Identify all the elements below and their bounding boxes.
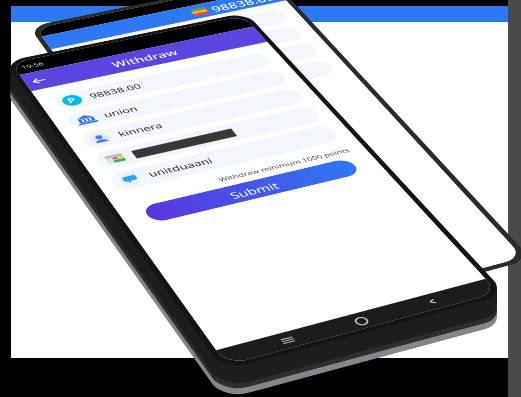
staticText: unitduaani	[146, 156, 217, 180]
button[interactable]: kinnera	[78, 87, 307, 150]
button[interactable]: Back	[418, 293, 447, 310]
staticText: union	[101, 104, 142, 120]
button[interactable]: Recents	[273, 331, 302, 349]
staticText: kinnera	[116, 121, 166, 140]
staticText: Withdraw minimum 1000 points	[110, 147, 352, 209]
staticText: Submit	[226, 179, 282, 201]
button[interactable]	[92, 105, 324, 171]
button[interactable]: unitduaani	[107, 124, 342, 191]
button[interactable]: Back	[25, 74, 51, 87]
staticText: 98838.00	[87, 82, 144, 101]
button[interactable]: union	[64, 69, 290, 131]
staticText: 98838.00	[207, 0, 278, 14]
button[interactable]: Submit	[141, 158, 362, 223]
staticText: 19:56	[20, 61, 46, 71]
button[interactable]: P	[50, 52, 274, 111]
staticText: Withdraw	[109, 47, 182, 70]
button[interactable]: Home	[346, 312, 374, 329]
staticText: P	[65, 95, 80, 106]
